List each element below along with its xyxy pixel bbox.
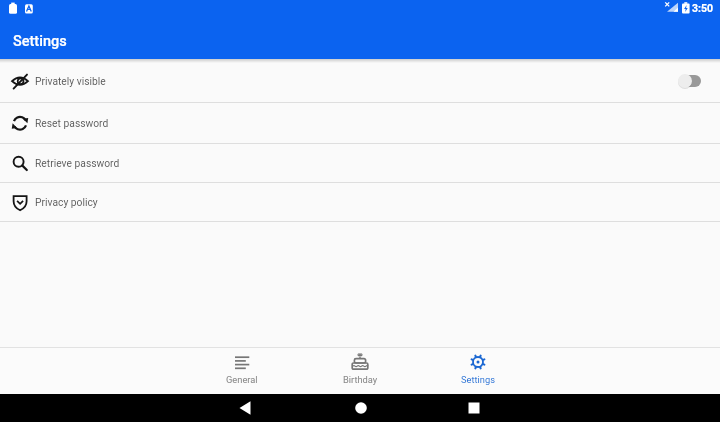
staticText: Birthday bbox=[343, 374, 378, 385]
button[interactable]: Birthday bbox=[301, 348, 419, 394]
staticText: Retrieve password bbox=[35, 157, 120, 169]
button[interactable] bbox=[678, 71, 701, 91]
button[interactable] bbox=[236, 398, 254, 418]
staticText: Reset password bbox=[35, 117, 109, 129]
button[interactable]: Privately visible bbox=[0, 59, 720, 102]
button[interactable]: Retrieve password bbox=[0, 144, 720, 182]
button[interactable]: General bbox=[183, 348, 301, 394]
staticText: 3:50 bbox=[692, 2, 714, 14]
button[interactable]: Settings bbox=[419, 348, 537, 394]
button[interactable] bbox=[465, 398, 483, 418]
staticText: Settings bbox=[13, 33, 67, 50]
staticText: Privacy policy bbox=[35, 196, 98, 208]
staticText: General bbox=[226, 374, 258, 385]
button[interactable] bbox=[352, 398, 370, 418]
staticText: Settings bbox=[461, 374, 495, 385]
button[interactable]: Privacy policy bbox=[0, 183, 720, 221]
button[interactable]: Reset password bbox=[0, 103, 720, 143]
staticText: Privately visible bbox=[35, 75, 106, 87]
